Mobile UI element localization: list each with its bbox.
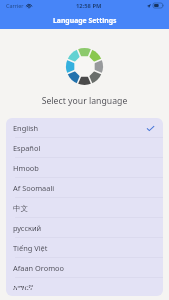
button[interactable]: русский	[6, 218, 163, 238]
staticText: русский	[13, 223, 42, 233]
staticText: English	[13, 123, 39, 133]
staticText: 12:58 PM	[76, 2, 102, 10]
button[interactable]: አማርኛ	[6, 278, 163, 296]
button[interactable]: English	[6, 118, 163, 138]
other: Selected	[147, 126, 154, 131]
button[interactable]: Afaan Oromoo	[6, 258, 163, 278]
staticText: Hmoob	[13, 163, 39, 173]
button[interactable]: Hmoob	[6, 158, 163, 178]
staticText: Tiếng Việt	[13, 243, 48, 253]
staticText: አማርኛ	[13, 284, 34, 291]
staticText: 中文	[13, 204, 28, 213]
button[interactable]: Tiếng Việt	[6, 238, 163, 258]
staticText: Español	[13, 143, 41, 153]
button[interactable]: Español	[6, 138, 163, 158]
staticText: Carrier	[6, 2, 24, 9]
staticText: Language Settings	[53, 16, 117, 25]
staticText: Af Soomaali	[13, 183, 55, 193]
staticText: Select your language	[0, 95, 169, 107]
staticText: Afaan Oromoo	[13, 263, 65, 273]
button[interactable]: Af Soomaali	[6, 178, 163, 198]
button[interactable]: 中文	[6, 198, 163, 218]
